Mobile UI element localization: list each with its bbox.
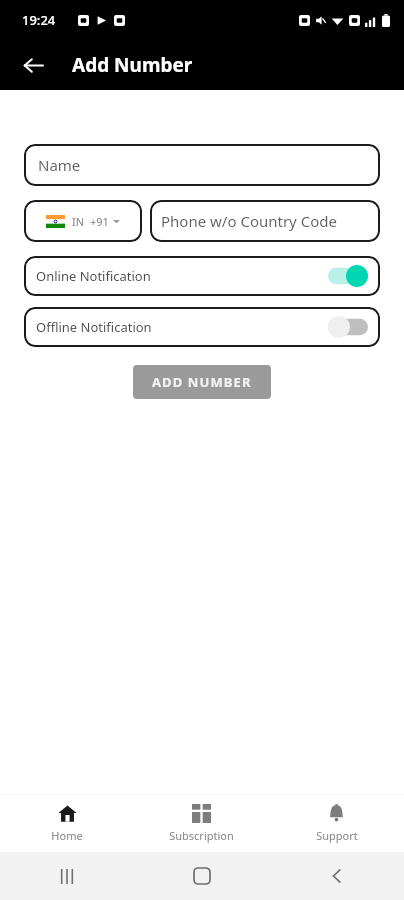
staticText: IN xyxy=(72,214,85,229)
button[interactable]: IN xyxy=(24,200,142,242)
staticText: Support xyxy=(316,828,358,843)
button[interactable]: Recent apps xyxy=(50,859,84,893)
button[interactable]: Online Notification xyxy=(24,256,380,296)
button[interactable]: Support xyxy=(269,798,404,849)
button[interactable]: Home xyxy=(0,798,134,849)
staticText: Phone w/o Country Code xyxy=(161,211,337,231)
button[interactable]: ADD NUMBER xyxy=(133,365,271,399)
button[interactable]: Back xyxy=(320,859,354,893)
staticText: Subscription xyxy=(169,828,234,843)
button[interactable]: Subscription xyxy=(134,798,269,849)
staticText: Name xyxy=(38,155,81,175)
button[interactable]: Name xyxy=(24,144,380,186)
button[interactable]: Offline Notification xyxy=(24,307,380,347)
staticText: 19:24 xyxy=(22,11,56,29)
button[interactable]: Phone w/o Country Code xyxy=(150,200,380,242)
button[interactable]: Back xyxy=(12,44,54,86)
staticText: Online Notification xyxy=(36,267,151,285)
staticText: Offline Notification xyxy=(36,318,152,336)
button[interactable]: Home xyxy=(185,859,219,893)
staticText: ADD NUMBER xyxy=(152,373,252,391)
staticText: +91 xyxy=(90,214,109,229)
staticText: Home xyxy=(51,828,83,843)
staticText: Add Number xyxy=(72,52,193,78)
